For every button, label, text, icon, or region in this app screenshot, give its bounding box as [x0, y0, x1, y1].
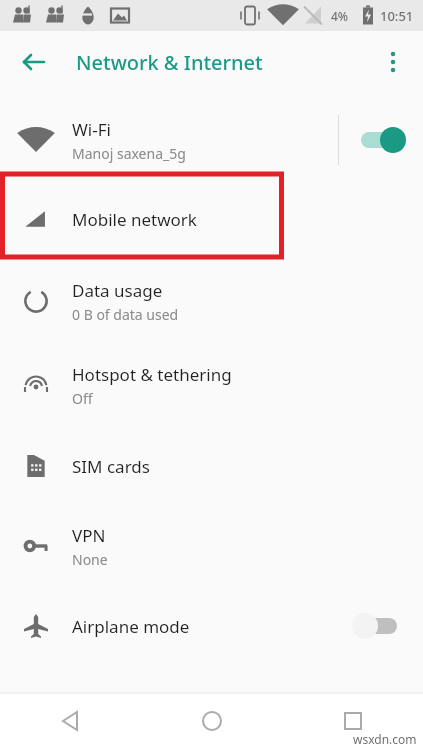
staticText: Hotspot & tethering	[72, 363, 232, 386]
staticText: 4%	[331, 8, 349, 24]
staticText: Network & Internet	[76, 49, 263, 76]
button[interactable]: Wi-Fi	[0, 101, 423, 179]
button[interactable]: Hotspot & tethering	[0, 343, 423, 427]
button[interactable]: Mobile network	[0, 179, 423, 259]
button[interactable]: Data usage	[0, 259, 423, 343]
staticText: wsxdn.com	[353, 731, 417, 747]
staticText: Manoj saxena_5g	[72, 144, 186, 163]
button[interactable]: Back	[47, 697, 95, 745]
button[interactable]: Airplane mode toggle, off	[351, 613, 399, 639]
button[interactable]: VPN	[0, 505, 423, 587]
button[interactable]: SIM cards	[0, 427, 423, 505]
button[interactable]: More options	[371, 40, 415, 84]
button[interactable]: Wi-Fi toggle, on	[359, 127, 407, 153]
staticText: Mobile network	[72, 208, 197, 231]
button[interactable]: Back	[12, 40, 56, 84]
staticText: Data usage	[72, 279, 163, 302]
staticText: VPN	[72, 524, 106, 547]
staticText: None	[72, 550, 108, 569]
staticText: Airplane mode	[72, 615, 190, 638]
staticText: Wi-Fi	[72, 118, 111, 141]
button[interactable]: Airplane mode	[0, 587, 423, 665]
staticText: 0 B of data used	[72, 305, 179, 324]
staticText: 10:51	[380, 7, 414, 25]
staticText: SIM cards	[72, 455, 150, 478]
button[interactable]: Home	[188, 697, 236, 745]
staticText: Off	[72, 389, 93, 408]
button[interactable]: Recent apps	[329, 697, 377, 745]
